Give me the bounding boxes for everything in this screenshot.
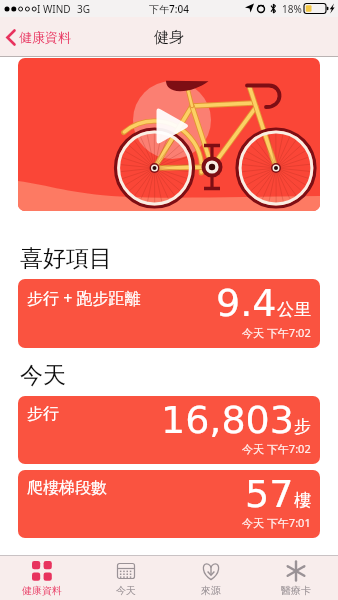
staticText: 今天 下午7:01 bbox=[242, 515, 311, 530]
staticText: 健康資料 bbox=[22, 584, 62, 597]
staticText: 公里 bbox=[277, 299, 311, 320]
button[interactable]: 今天 bbox=[84, 556, 168, 600]
button[interactable]: 來源 bbox=[168, 556, 253, 600]
staticText: 來源 bbox=[201, 584, 221, 597]
button[interactable]: 健康資料 bbox=[0, 556, 84, 600]
staticText: 樓 bbox=[294, 490, 311, 511]
staticText: 16,803 bbox=[161, 398, 294, 442]
staticText: 爬樓梯段數 bbox=[27, 478, 107, 498]
staticText: 9.4 bbox=[216, 281, 277, 325]
button[interactable]: 步行 + 跑步距離 bbox=[18, 279, 320, 348]
staticText: 喜好項目 bbox=[20, 244, 112, 273]
staticText: 18% bbox=[282, 2, 302, 16]
button[interactable]: 健康資料 bbox=[4, 17, 71, 57]
button[interactable]: 爬樓梯段數 bbox=[18, 470, 320, 538]
staticText: 今天 下午7:02 bbox=[242, 325, 311, 340]
staticText: 健身 bbox=[154, 28, 184, 47]
staticText: 步 bbox=[294, 416, 311, 437]
staticText: 步行 + 跑步距離 bbox=[27, 287, 141, 309]
staticText: 今天 bbox=[116, 584, 136, 597]
button[interactable]: Play cycling workout video bbox=[18, 58, 320, 211]
staticText: 下午7:04 bbox=[149, 2, 189, 16]
button[interactable]: 步行 bbox=[18, 396, 320, 464]
staticText: 健康資料 bbox=[19, 29, 71, 45]
staticText: 3G bbox=[77, 2, 90, 16]
staticText: 今天 下午7:02 bbox=[242, 441, 311, 456]
staticText: I WIND bbox=[37, 2, 71, 16]
staticText: 今天 bbox=[20, 361, 66, 390]
staticText: 醫療卡 bbox=[281, 584, 311, 597]
staticText: 57 bbox=[245, 472, 294, 516]
button[interactable]: 醫療卡 bbox=[253, 556, 338, 600]
staticText: 步行 bbox=[27, 404, 59, 424]
